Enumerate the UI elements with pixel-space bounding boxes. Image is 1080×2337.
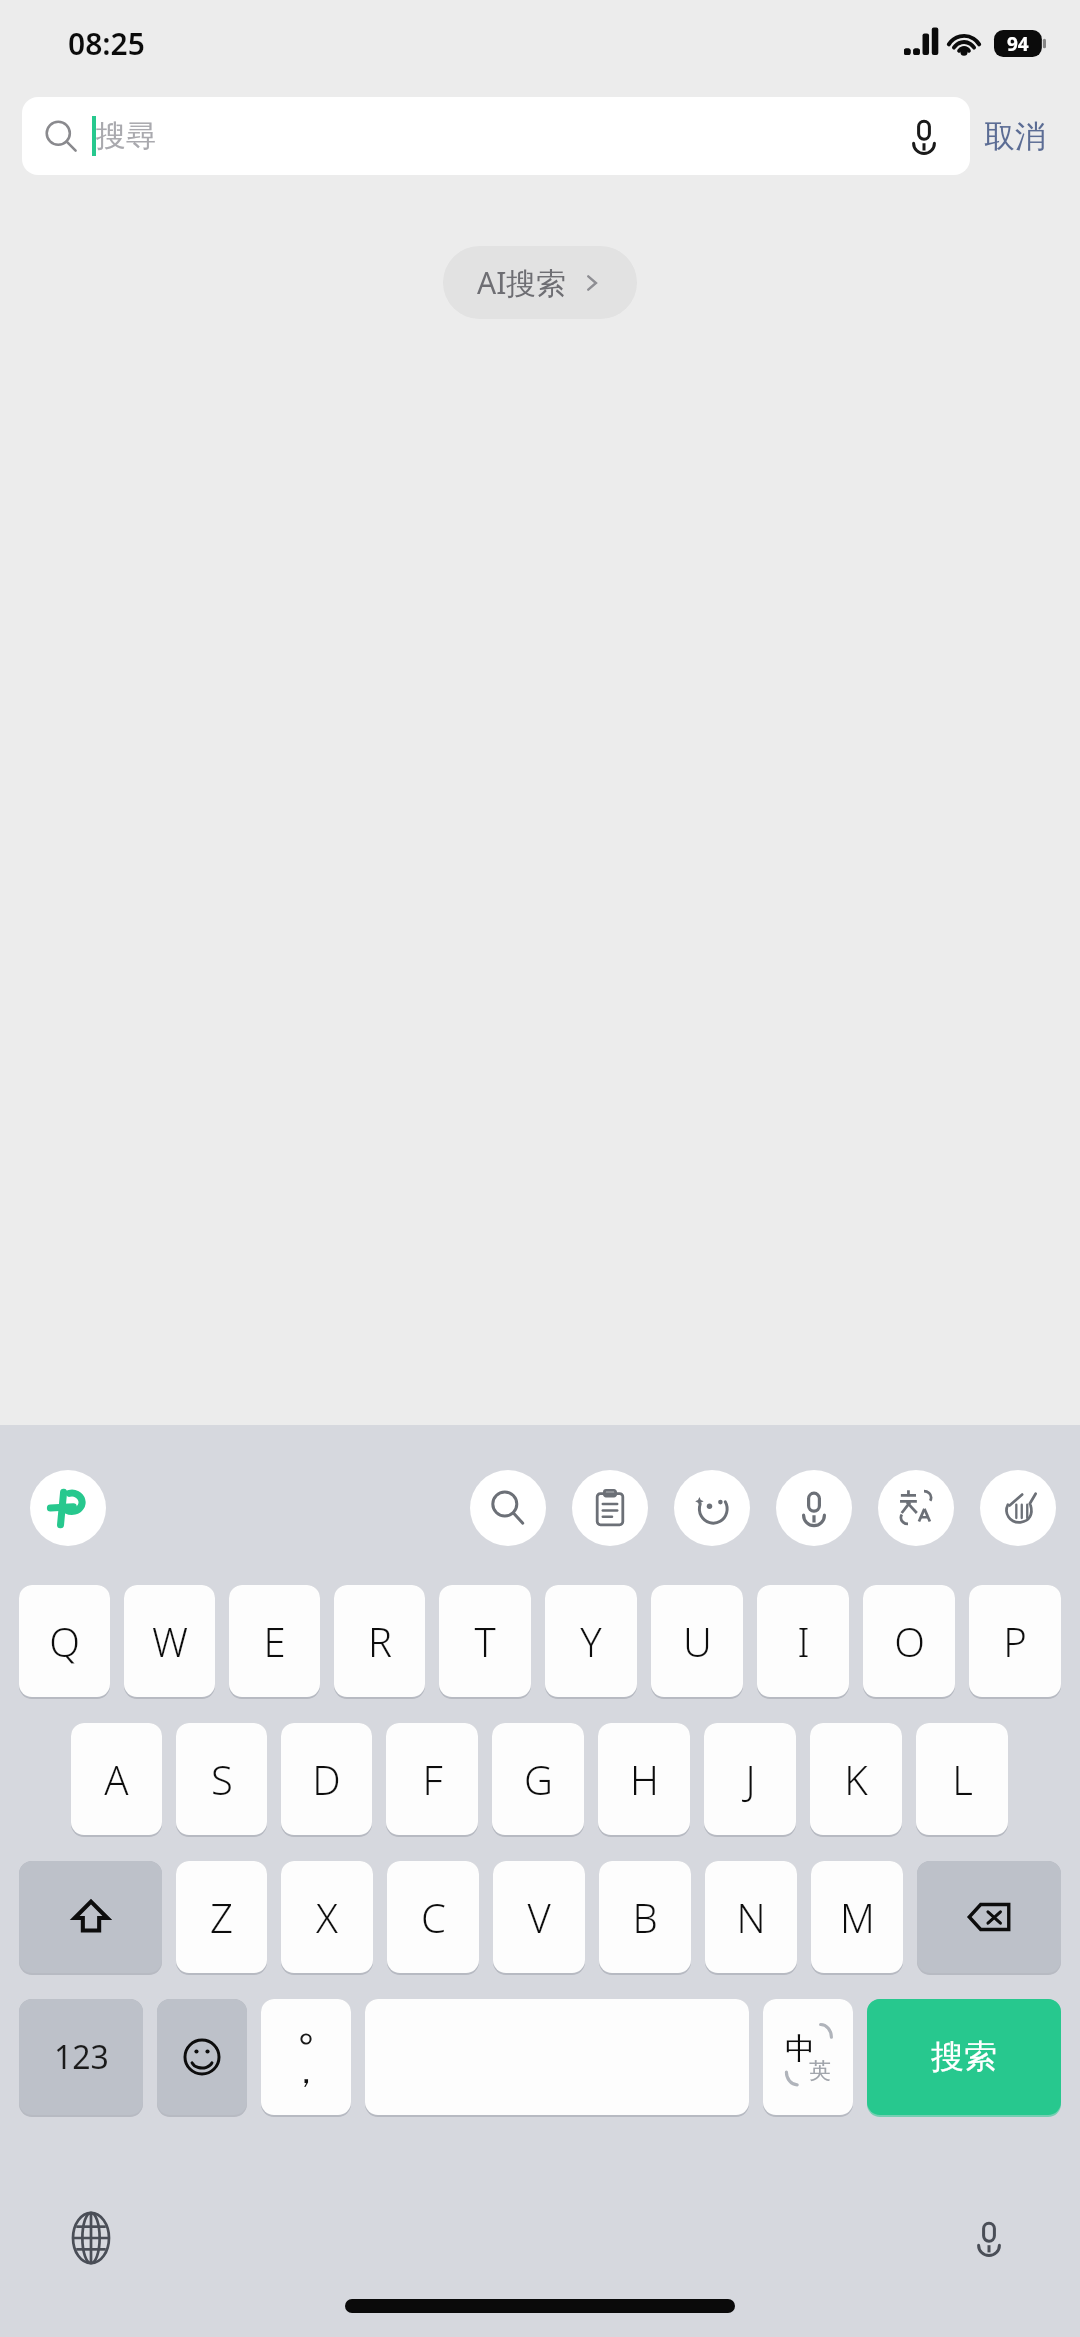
button[interactable]: I: [757, 1585, 849, 1697]
staticText: 搜索: [931, 2036, 997, 2078]
staticText: 英: [809, 2057, 831, 2085]
button[interactable]: D: [281, 1723, 372, 1835]
staticText: A: [104, 1752, 129, 1806]
button[interactable]: K: [810, 1723, 902, 1835]
staticText: P: [1003, 1614, 1027, 1668]
staticText: K: [844, 1752, 868, 1806]
button[interactable]: Voice search: [900, 112, 948, 160]
staticText: G: [524, 1752, 553, 1806]
staticText: B: [632, 1890, 658, 1944]
button[interactable]: J: [704, 1723, 796, 1835]
button[interactable]: Translate: [878, 1470, 954, 1546]
staticText: C: [421, 1890, 446, 1944]
button[interactable]: E: [229, 1585, 320, 1697]
staticText: V: [527, 1890, 551, 1944]
button[interactable]: B: [599, 1861, 691, 1973]
staticText: W: [152, 1614, 188, 1668]
staticText: Y: [580, 1614, 602, 1668]
staticText: X: [316, 1890, 338, 1944]
button[interactable]: W: [124, 1585, 215, 1697]
button[interactable]: 取消: [970, 117, 1060, 156]
button[interactable]: Stickers: [674, 1470, 750, 1546]
button[interactable]: N: [705, 1861, 797, 1973]
staticText: R: [368, 1614, 392, 1668]
button[interactable]: Chinese English toggle: [763, 1999, 853, 2115]
button[interactable]: V: [493, 1861, 585, 1973]
button[interactable]: 123: [19, 1999, 143, 2115]
button[interactable]: C: [387, 1861, 479, 1973]
button[interactable]: Q: [19, 1585, 110, 1697]
staticText: 搜尋: [96, 117, 156, 155]
button[interactable]: Search: [470, 1470, 546, 1546]
staticText: Z: [210, 1890, 233, 1944]
button[interactable]: A: [71, 1723, 162, 1835]
staticText: 08:25: [68, 23, 145, 64]
button[interactable]: AI搜索: [443, 246, 637, 319]
button[interactable]: Z: [176, 1861, 267, 1973]
staticText: I: [797, 1614, 810, 1668]
button[interactable]: S: [176, 1723, 267, 1835]
button[interactable]: M: [811, 1861, 903, 1973]
staticText: Q: [49, 1614, 80, 1668]
staticText: O: [894, 1614, 925, 1668]
staticText: J: [745, 1752, 756, 1806]
button[interactable]: O: [863, 1585, 955, 1697]
staticText: S: [211, 1752, 233, 1806]
staticText: ，: [289, 2050, 323, 2093]
button[interactable]: H: [598, 1723, 690, 1835]
button[interactable]: Shift: [19, 1861, 162, 1973]
button[interactable]: L: [916, 1723, 1008, 1835]
button[interactable]: P: [969, 1585, 1061, 1697]
staticText: L: [952, 1752, 973, 1806]
button[interactable]: Handwriting: [980, 1470, 1056, 1546]
button[interactable]: Clipboard: [572, 1470, 648, 1546]
staticText: 取消: [984, 117, 1046, 156]
button[interactable]: Voice: [954, 2203, 1024, 2273]
staticText: 94: [1007, 31, 1029, 57]
button[interactable]: Backspace: [917, 1861, 1061, 1973]
button[interactable]: Y: [545, 1585, 637, 1697]
staticText: AI搜索: [477, 262, 567, 303]
staticText: 中: [785, 2030, 815, 2068]
staticText: E: [263, 1614, 286, 1668]
button[interactable]: ，: [261, 1999, 351, 2115]
button[interactable]: Change keyboard: [56, 2203, 126, 2273]
button[interactable]: R: [334, 1585, 425, 1697]
staticText: H: [630, 1752, 659, 1806]
staticText: T: [474, 1614, 496, 1668]
button[interactable]: T: [439, 1585, 531, 1697]
staticText: D: [312, 1752, 341, 1806]
staticText: M: [840, 1890, 875, 1944]
button[interactable]: Emoji: [157, 1999, 247, 2115]
button[interactable]: G: [492, 1723, 584, 1835]
button[interactable]: Voice input: [776, 1470, 852, 1546]
button[interactable]: F: [386, 1723, 478, 1835]
staticText: 123: [54, 2035, 109, 2079]
button[interactable]: 搜索: [867, 1999, 1061, 2115]
button[interactable]: U: [651, 1585, 743, 1697]
button[interactable]: Input method logo: [30, 1470, 106, 1546]
staticText: F: [422, 1752, 443, 1806]
button[interactable]: 搜尋: [22, 97, 970, 175]
button[interactable]: X: [281, 1861, 373, 1973]
staticText: N: [736, 1890, 766, 1944]
staticText: U: [683, 1614, 712, 1668]
